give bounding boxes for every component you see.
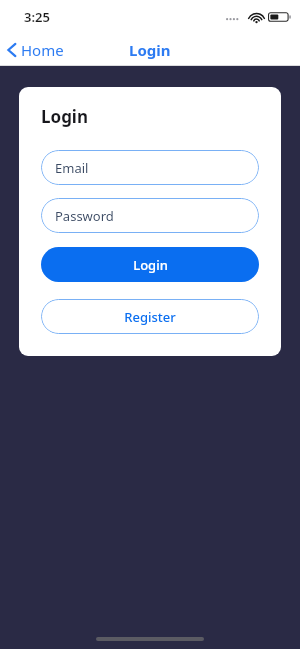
button[interactable]: Login	[41, 247, 259, 282]
staticText: Login	[133, 256, 168, 274]
other: Back	[6, 41, 18, 59]
staticText: 3:25	[24, 8, 50, 26]
button[interactable]: Email	[41, 150, 259, 185]
staticText: Register	[124, 308, 176, 326]
staticText: Email	[55, 159, 89, 177]
button[interactable]: Password	[41, 198, 259, 233]
staticText: Login	[129, 40, 171, 60]
staticText: Home	[21, 40, 64, 60]
staticText: Password	[55, 207, 114, 225]
staticText: Login	[41, 105, 89, 128]
button[interactable]: Register	[41, 299, 259, 334]
button[interactable]: Back	[0, 36, 74, 64]
